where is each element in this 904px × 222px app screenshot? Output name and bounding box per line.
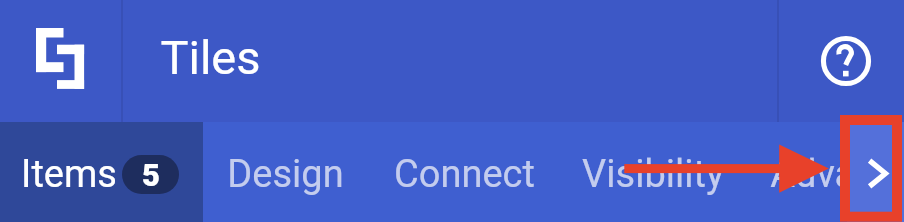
button[interactable]: Home	[0, 0, 121, 122]
button[interactable]: Design	[203, 122, 371, 222]
button[interactable]: Items	[0, 122, 203, 222]
staticText: Visibility	[582, 152, 724, 197]
staticText: Advanced	[770, 152, 882, 197]
staticText: 5	[142, 157, 160, 193]
staticText: Design	[227, 152, 344, 197]
button[interactable]: Connect	[371, 122, 558, 222]
button[interactable]: Scroll tabs forward	[847, 122, 904, 222]
staticText: Tiles	[160, 30, 261, 85]
staticText: Items	[21, 152, 117, 197]
button[interactable]: Advanced	[748, 122, 904, 222]
button[interactable]: Visibility	[558, 122, 748, 222]
button[interactable]: Help	[779, 0, 904, 122]
staticText: Connect	[394, 152, 535, 197]
